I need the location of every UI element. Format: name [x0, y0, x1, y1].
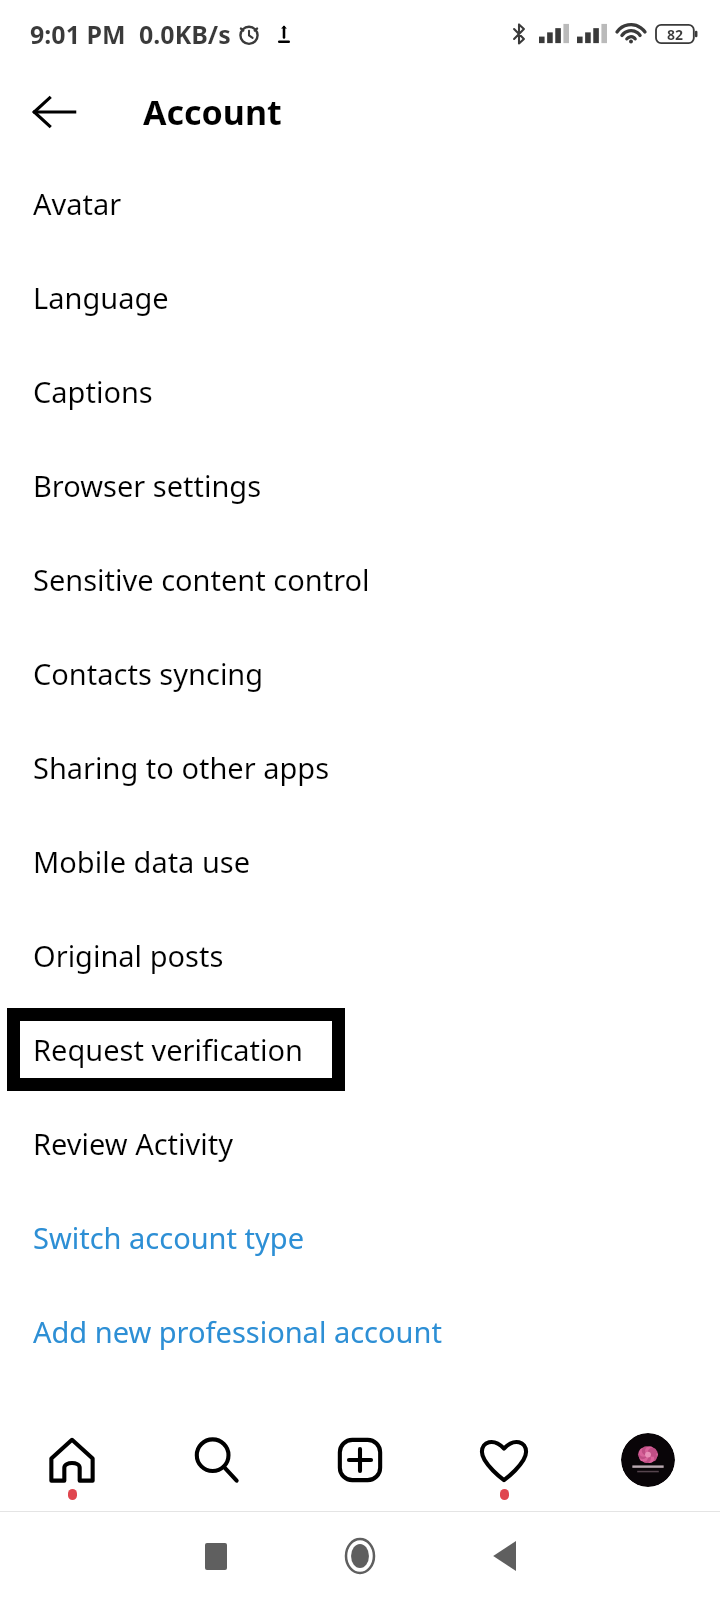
- staticText: Switch account type: [33, 1218, 305, 1257]
- button[interactable]: Home: [0, 1409, 144, 1511]
- staticText: Contacts syncing: [33, 654, 264, 693]
- button[interactable]: Activity: [432, 1409, 576, 1511]
- staticText: Original posts: [33, 936, 224, 975]
- staticText: 9:01 PM: [30, 17, 126, 51]
- staticText: Language: [33, 278, 169, 317]
- staticText: Request verification: [33, 1030, 304, 1069]
- button[interactable]: Sensitive content control: [0, 532, 720, 626]
- staticText: Sensitive content control: [33, 560, 370, 599]
- staticText: Avatar: [33, 184, 122, 223]
- button[interactable]: Create: [288, 1409, 432, 1511]
- button[interactable]: Add new professional account: [0, 1284, 720, 1378]
- button[interactable]: Request verification: [7, 1008, 345, 1091]
- button[interactable]: Contacts syncing: [0, 626, 720, 720]
- staticText: 0.0KB/s: [139, 17, 231, 51]
- staticText: Mobile data use: [33, 842, 251, 881]
- button[interactable]: Back: [432, 1521, 576, 1591]
- staticText: Captions: [33, 372, 153, 411]
- button[interactable]: Recents: [144, 1521, 288, 1591]
- button[interactable]: Avatar: [0, 156, 720, 250]
- button[interactable]: Search: [144, 1409, 288, 1511]
- staticText: Browser settings: [33, 466, 262, 505]
- button[interactable]: Back: [18, 76, 90, 148]
- staticText: Account: [143, 89, 282, 135]
- staticText: Sharing to other apps: [33, 748, 330, 787]
- staticText: 82: [667, 25, 684, 44]
- button[interactable]: Profile: [576, 1409, 720, 1511]
- button[interactable]: Language: [0, 250, 720, 344]
- button[interactable]: Browser settings: [0, 438, 720, 532]
- staticText: Add new professional account: [33, 1312, 442, 1351]
- button[interactable]: Original posts: [0, 908, 720, 1002]
- button[interactable]: Mobile data use: [0, 814, 720, 908]
- button[interactable]: Captions: [0, 344, 720, 438]
- staticText: Review Activity: [33, 1124, 234, 1163]
- button[interactable]: Switch account type: [0, 1190, 720, 1284]
- button[interactable]: Home: [288, 1521, 432, 1591]
- button[interactable]: Sharing to other apps: [0, 720, 720, 814]
- button[interactable]: Review Activity: [0, 1096, 720, 1190]
